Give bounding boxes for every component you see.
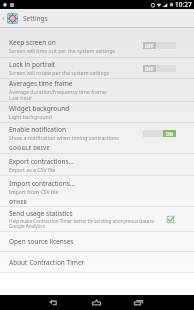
button[interactable]: Home [89,295,104,310]
staticText: Keep screen on [9,38,56,47]
button[interactable]: Widget background [0,102,194,122]
staticText: Import contractions... [9,179,75,188]
staticText: Show a notification when timing contract… [9,134,119,141]
staticText: OTHER [9,199,28,206]
staticText: Export contractions... [9,157,74,166]
button[interactable]: Recent apps [131,295,146,310]
staticText: Send usage statistics [9,209,73,218]
staticText: OFF [145,43,154,49]
staticText: 10:27 [175,0,192,9]
staticText: GOOGLE DRIVE [9,145,50,152]
button[interactable]: Averages time frame [0,79,194,101]
button[interactable]: Export contractions... [0,154,194,175]
button[interactable]: Import contractions... [0,176,194,197]
staticText: Enable notification [9,125,66,134]
staticText: Export as a CSV file [9,166,56,173]
button[interactable]: About Contraction Timer [0,252,194,272]
staticText: About Contraction Timer [9,258,85,267]
button[interactable]: Keep screen on [0,28,194,57]
staticText: Widget background [9,104,70,113]
button[interactable]: Navigate up [0,9,194,27]
button[interactable]: Lock in portrait [0,58,194,78]
staticText: Settings [23,14,48,23]
button[interactable]: Send usage statistics [0,207,194,231]
staticText: Light background [9,113,53,120]
staticText: Import from CSV file [9,188,59,195]
staticText: Averages time frame [9,79,73,88]
other: Send usage statistics [166,215,175,224]
staticText: Average duration/frequency time frame: L… [9,88,108,101]
button[interactable]: Open source licenses [0,232,194,251]
staticText: Lock in portrait [9,60,56,69]
staticText: Help make Contraction Timer better by se… [9,218,155,230]
button[interactable]: Enable notification [0,123,194,143]
other: Navigate up [1,16,6,21]
staticText: ON [166,131,174,137]
staticText: Screen will rotate per the system settin… [9,69,110,76]
staticText: OFF [145,66,154,72]
staticText: Screen will time out per the system sett… [9,47,116,54]
button[interactable]: Back [46,295,61,310]
staticText: Open source licenses [9,237,74,246]
